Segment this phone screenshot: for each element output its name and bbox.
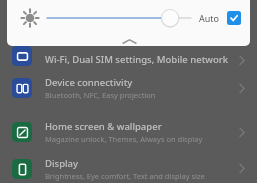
staticText: Home screen & wallpaper xyxy=(45,120,162,133)
button[interactable]: Wi-Fi, Dual SIM settings, Mobile network xyxy=(0,44,257,66)
staticText: Auto xyxy=(199,12,220,24)
staticText: Wi-Fi, Dual SIM settings, Mobile network xyxy=(45,53,229,66)
button[interactable]: Auto xyxy=(199,3,250,33)
staticText: Bluetooth, NFC, Easy projection xyxy=(45,90,156,100)
button[interactable]: Brightness level xyxy=(47,3,191,33)
button[interactable]: Display xyxy=(0,154,257,183)
staticText: Device connectivity xyxy=(45,76,133,89)
button[interactable]: Collapse xyxy=(109,36,149,46)
button[interactable]: Brightness xyxy=(17,5,43,31)
staticText: Brightness, Eye comfort, Text and displa… xyxy=(45,171,205,181)
button[interactable]: Device connectivity xyxy=(0,66,257,110)
button[interactable]: Home screen & wallpaper xyxy=(0,110,257,154)
staticText: Magazine unlock, Themes, Always on displ… xyxy=(45,134,203,144)
staticText: Display xyxy=(45,157,79,170)
